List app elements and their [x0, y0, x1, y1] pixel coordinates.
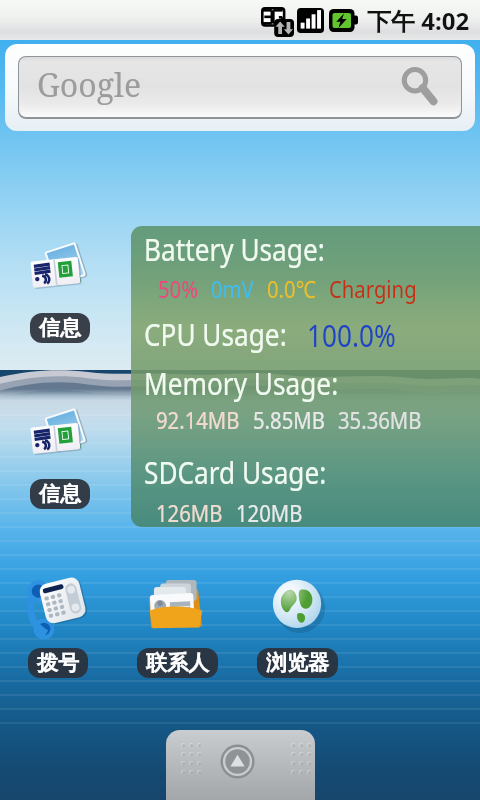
staticText: 120MB	[236, 496, 303, 527]
staticText: 35.36MB	[338, 403, 422, 436]
button[interactable]	[5, 44, 475, 131]
staticText: 92.14MB	[156, 403, 240, 436]
staticText: 100.0%	[307, 314, 396, 356]
button[interactable]: 浏览器	[256, 573, 338, 678]
staticText: 浏览器	[266, 650, 329, 676]
staticText: Memory Usage:	[144, 362, 338, 404]
other: 3G data	[261, 5, 294, 37]
button[interactable]: 拨号	[17, 573, 99, 678]
staticText: 50%	[158, 272, 199, 305]
staticText: 0.0℃	[267, 272, 316, 305]
staticText: 拨号	[37, 650, 79, 676]
button[interactable]: 信息	[19, 240, 101, 343]
staticText: 0mV	[211, 272, 254, 305]
staticText: 126MB	[156, 496, 223, 527]
button[interactable]: Battery Usage:	[131, 226, 480, 527]
staticText: 联系人	[146, 650, 209, 676]
staticText: CPU Usage:	[144, 313, 287, 355]
staticText: 信息	[39, 315, 81, 341]
staticText: 信息	[39, 481, 81, 507]
staticText: 5.85MB	[253, 403, 325, 436]
button[interactable]: All apps	[166, 730, 315, 800]
button[interactable]: 信息	[19, 406, 101, 509]
staticText: SDCard Usage:	[144, 451, 326, 493]
staticText: Google	[37, 63, 142, 107]
staticText: 下午 4:02	[367, 4, 470, 37]
staticText: Charging	[329, 272, 417, 305]
staticText: Battery Usage:	[144, 228, 325, 270]
button[interactable]: 联系人	[136, 573, 218, 678]
other: Search	[399, 66, 441, 108]
other: Battery charging	[329, 8, 358, 33]
other: Signal strength	[297, 7, 324, 34]
